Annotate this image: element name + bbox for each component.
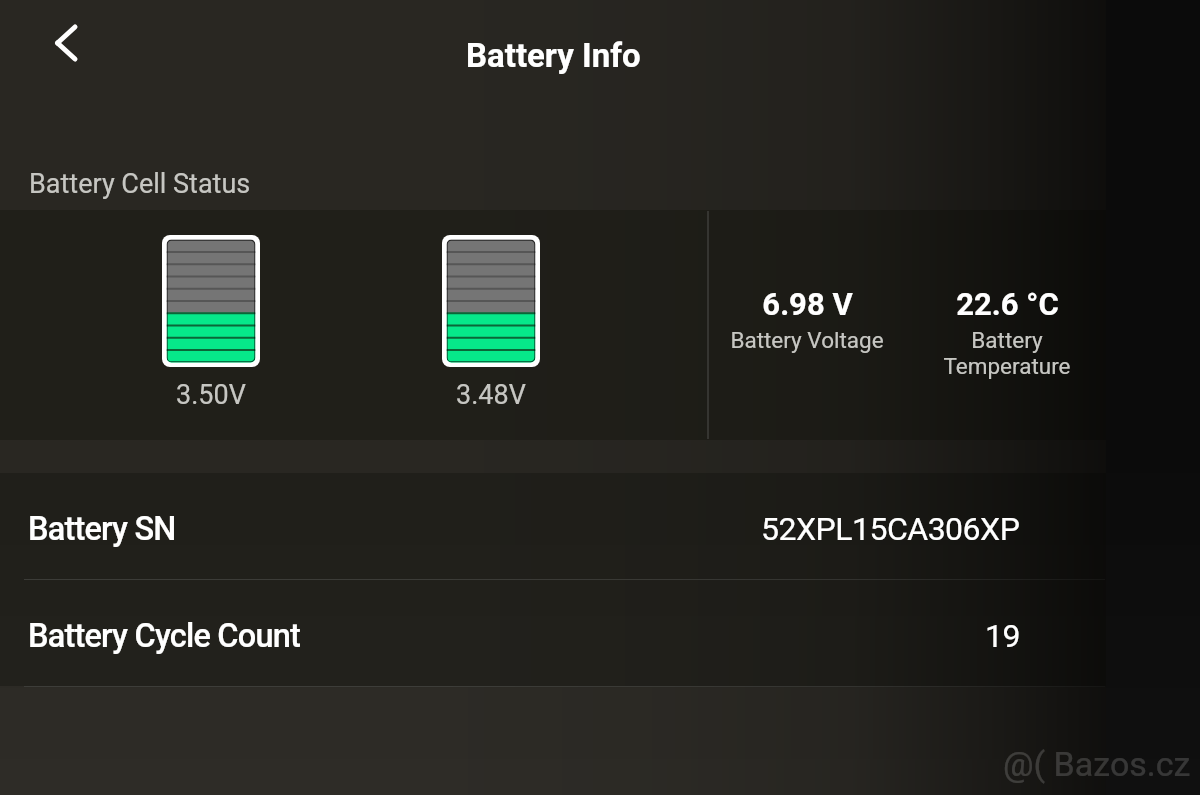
button[interactable]: Battery Cycle Count (0, 583, 1106, 689)
staticText: 22.6 °C (956, 286, 1059, 322)
staticText: Battery Temperature (943, 327, 1071, 379)
staticText: 3.48V (456, 379, 526, 411)
staticText: Battery SN (28, 510, 176, 548)
staticText: Battery Info (466, 36, 641, 75)
button[interactable]: Battery SN (0, 476, 1106, 582)
button[interactable]: Back (29, 14, 87, 72)
staticText: 19 (985, 617, 1020, 655)
staticText: Battery Voltage (730, 327, 884, 353)
staticText: Battery Cycle Count (28, 617, 300, 655)
staticText: 6.98 V (762, 286, 853, 322)
staticText: @( Bazos.cz (1003, 744, 1191, 784)
staticText: 52XPL15CA306XP (761, 510, 1020, 548)
staticText: 3.50V (176, 379, 246, 411)
staticText: Battery Cell Status (29, 168, 251, 200)
